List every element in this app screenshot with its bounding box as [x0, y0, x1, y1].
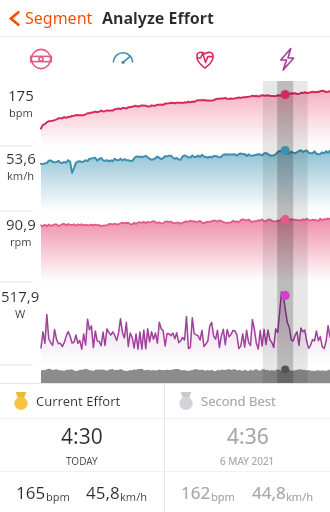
staticText: bpm — [46, 489, 70, 504]
button[interactable]: Power — [246, 37, 328, 81]
staticText: 45,8 — [86, 481, 120, 504]
staticText: 175 — [8, 85, 34, 105]
staticText: 53,6 — [6, 148, 36, 168]
staticText: km/h — [286, 489, 314, 504]
button[interactable]: Segment — [8, 7, 93, 29]
button[interactable]: Cadence — [0, 37, 82, 81]
staticText: 44,8 — [252, 481, 286, 504]
staticText: TODAY — [66, 454, 98, 468]
button[interactable]: Speed — [82, 37, 164, 81]
staticText: Second Best — [201, 392, 276, 410]
staticText: Current Effort — [36, 392, 121, 410]
staticText: km/h — [7, 168, 35, 183]
staticText: 165 — [16, 481, 46, 504]
staticText: Analyze Effort — [102, 7, 214, 29]
button[interactable]: Second Best — [165, 384, 330, 512]
staticText: 4:30 — [61, 422, 103, 451]
staticText: km/h — [120, 489, 148, 504]
staticText: Segment — [25, 7, 93, 29]
staticText: bpm — [9, 105, 33, 120]
staticText: rpm — [10, 234, 32, 249]
staticText: 517,9 — [1, 286, 40, 306]
staticText: bpm — [211, 489, 235, 504]
staticText: 6 MAY 2021 — [220, 454, 275, 468]
button[interactable]: Current Effort — [0, 384, 164, 512]
staticText: 90,9 — [6, 214, 36, 234]
button[interactable]: Heart rate — [164, 37, 246, 81]
staticText: 162 — [181, 481, 211, 504]
staticText: W — [15, 306, 26, 321]
staticText: 4:36 — [227, 422, 269, 451]
